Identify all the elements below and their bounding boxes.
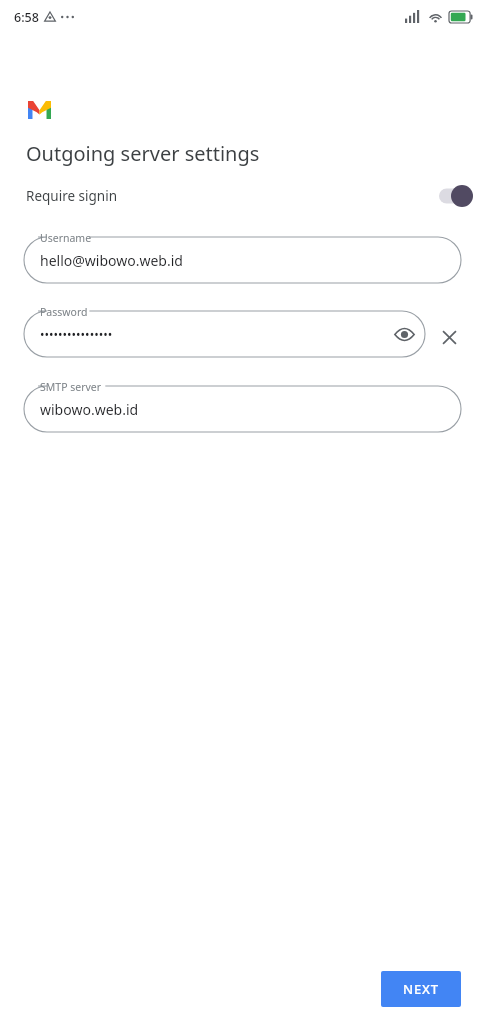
button[interactable]: Password [24, 311, 425, 357]
button[interactable]: NEXT [381, 971, 461, 1007]
button[interactable]: SMTP server [24, 386, 461, 432]
staticText: NEXT [403, 980, 439, 998]
button[interactable]: Username [24, 237, 461, 283]
button[interactable]: Show password [389, 319, 419, 349]
button[interactable]: Clear password [433, 321, 465, 353]
staticText: Require signin [26, 187, 117, 205]
staticText: Password [40, 305, 88, 319]
button[interactable]: Require signin [0, 178, 485, 214]
staticText: hello@wibowo.web.id [40, 251, 183, 270]
staticText: •••••••••••••••• [40, 326, 113, 342]
staticText: Username [40, 231, 92, 245]
staticText: wibowo.web.id [40, 400, 139, 419]
staticText: Outgoing server settings [26, 140, 260, 167]
staticText: SMTP server [40, 380, 102, 394]
staticText: 6:58 [14, 9, 39, 26]
